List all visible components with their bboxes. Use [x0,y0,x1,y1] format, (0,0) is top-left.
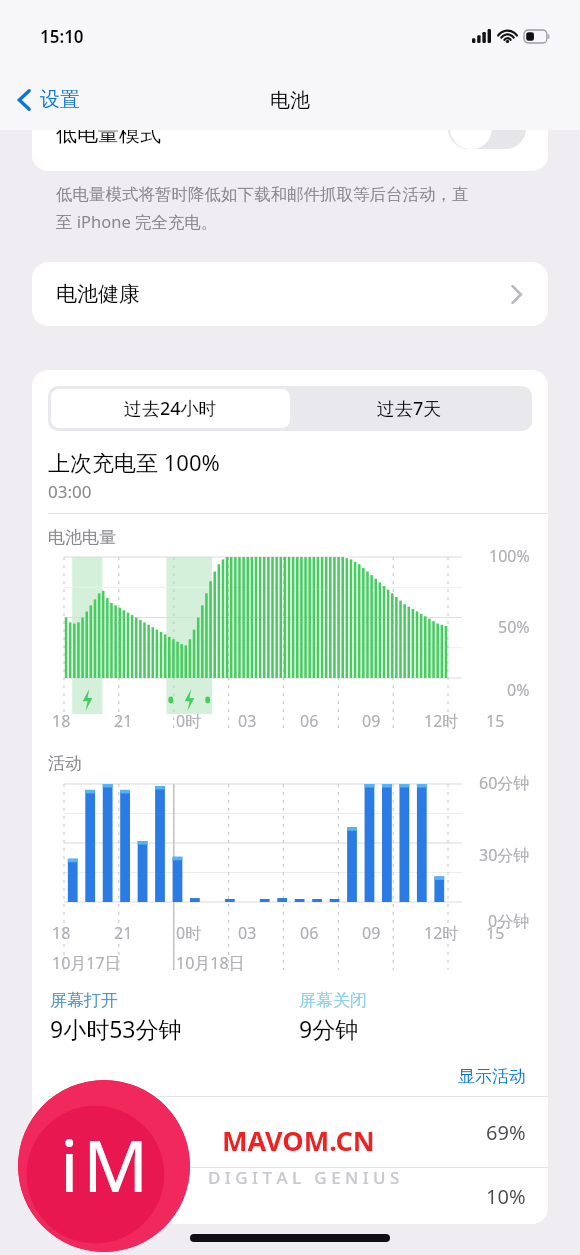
staticText: 低电量模式 [56,130,161,147]
staticText: 03:00 [48,480,92,503]
staticText: 09 [362,710,381,732]
staticText: 18 [52,922,71,944]
staticText: 10月18日 [176,952,245,974]
staticText: 15 [486,922,505,944]
staticText: 0分钟 [488,910,530,932]
staticText: 12时 [424,710,459,732]
staticText: 21 [114,710,133,732]
staticText: 显示活动 [458,1066,526,1087]
staticText: 屏幕关闭 [299,990,367,1011]
staticText: 06 [300,710,319,732]
staticText: 活动 [48,753,82,774]
staticText: 18 [52,710,71,732]
staticText: 低电量模式将暂时降低如下载和邮件抓取等后台活动，直 [56,184,469,205]
staticText: 69% [486,1119,526,1146]
staticText: 屏幕打开 [50,990,118,1011]
staticText: 50% [498,616,530,638]
staticText: 03 [238,710,257,732]
staticText: 0时 [176,710,202,732]
staticText: 10% [486,1183,526,1210]
staticText: 上次充电至 100% [48,447,220,477]
staticText: 12时 [424,922,459,944]
button[interactable]: 过去24小时 [51,389,290,428]
button[interactable]: 过去7天 [290,389,529,428]
staticText: 30分钟 [479,844,530,866]
staticText: 电池 [270,88,310,113]
button[interactable]: 设置 [0,81,92,118]
staticText: 15 [486,710,505,732]
button[interactable]: 69% [32,1097,548,1167]
staticText: 设置 [40,87,80,112]
staticText: M [83,1115,149,1213]
staticText: 21 [114,922,133,944]
staticText: 过去7天 [377,396,442,421]
staticText: 60分钟 [479,772,530,794]
staticText: 9分钟 [299,1013,359,1044]
staticText: 过去24小时 [124,396,217,421]
staticText: 电池健康 [56,281,140,307]
staticText: 10月17日 [52,952,121,974]
staticText: 9小时53分钟 [50,1013,182,1044]
staticText: 电池电量 [48,527,116,548]
staticText: 至 iPhone 完全充电。 [56,210,218,233]
staticText: 09 [362,922,381,944]
button[interactable]: 电池健康 [32,262,548,326]
staticText: 0时 [176,922,202,944]
staticText: 06 [300,922,319,944]
button[interactable]: 低电量模式开关 [448,130,526,149]
staticText: 03 [238,922,257,944]
staticText: 微信 [106,1184,146,1209]
button[interactable]: 低电量模式 [32,130,548,171]
staticText: 15:10 [40,25,84,48]
staticText: 100% [489,545,530,567]
staticText: MAVOM.CN [222,1122,375,1159]
staticText: i [60,1115,79,1213]
button[interactable]: 微信 [32,1168,548,1224]
staticText: D I G I T A L G E N I U S [208,1166,400,1189]
button[interactable]: 显示活动 [458,1066,526,1087]
staticText: 0% [507,679,530,701]
